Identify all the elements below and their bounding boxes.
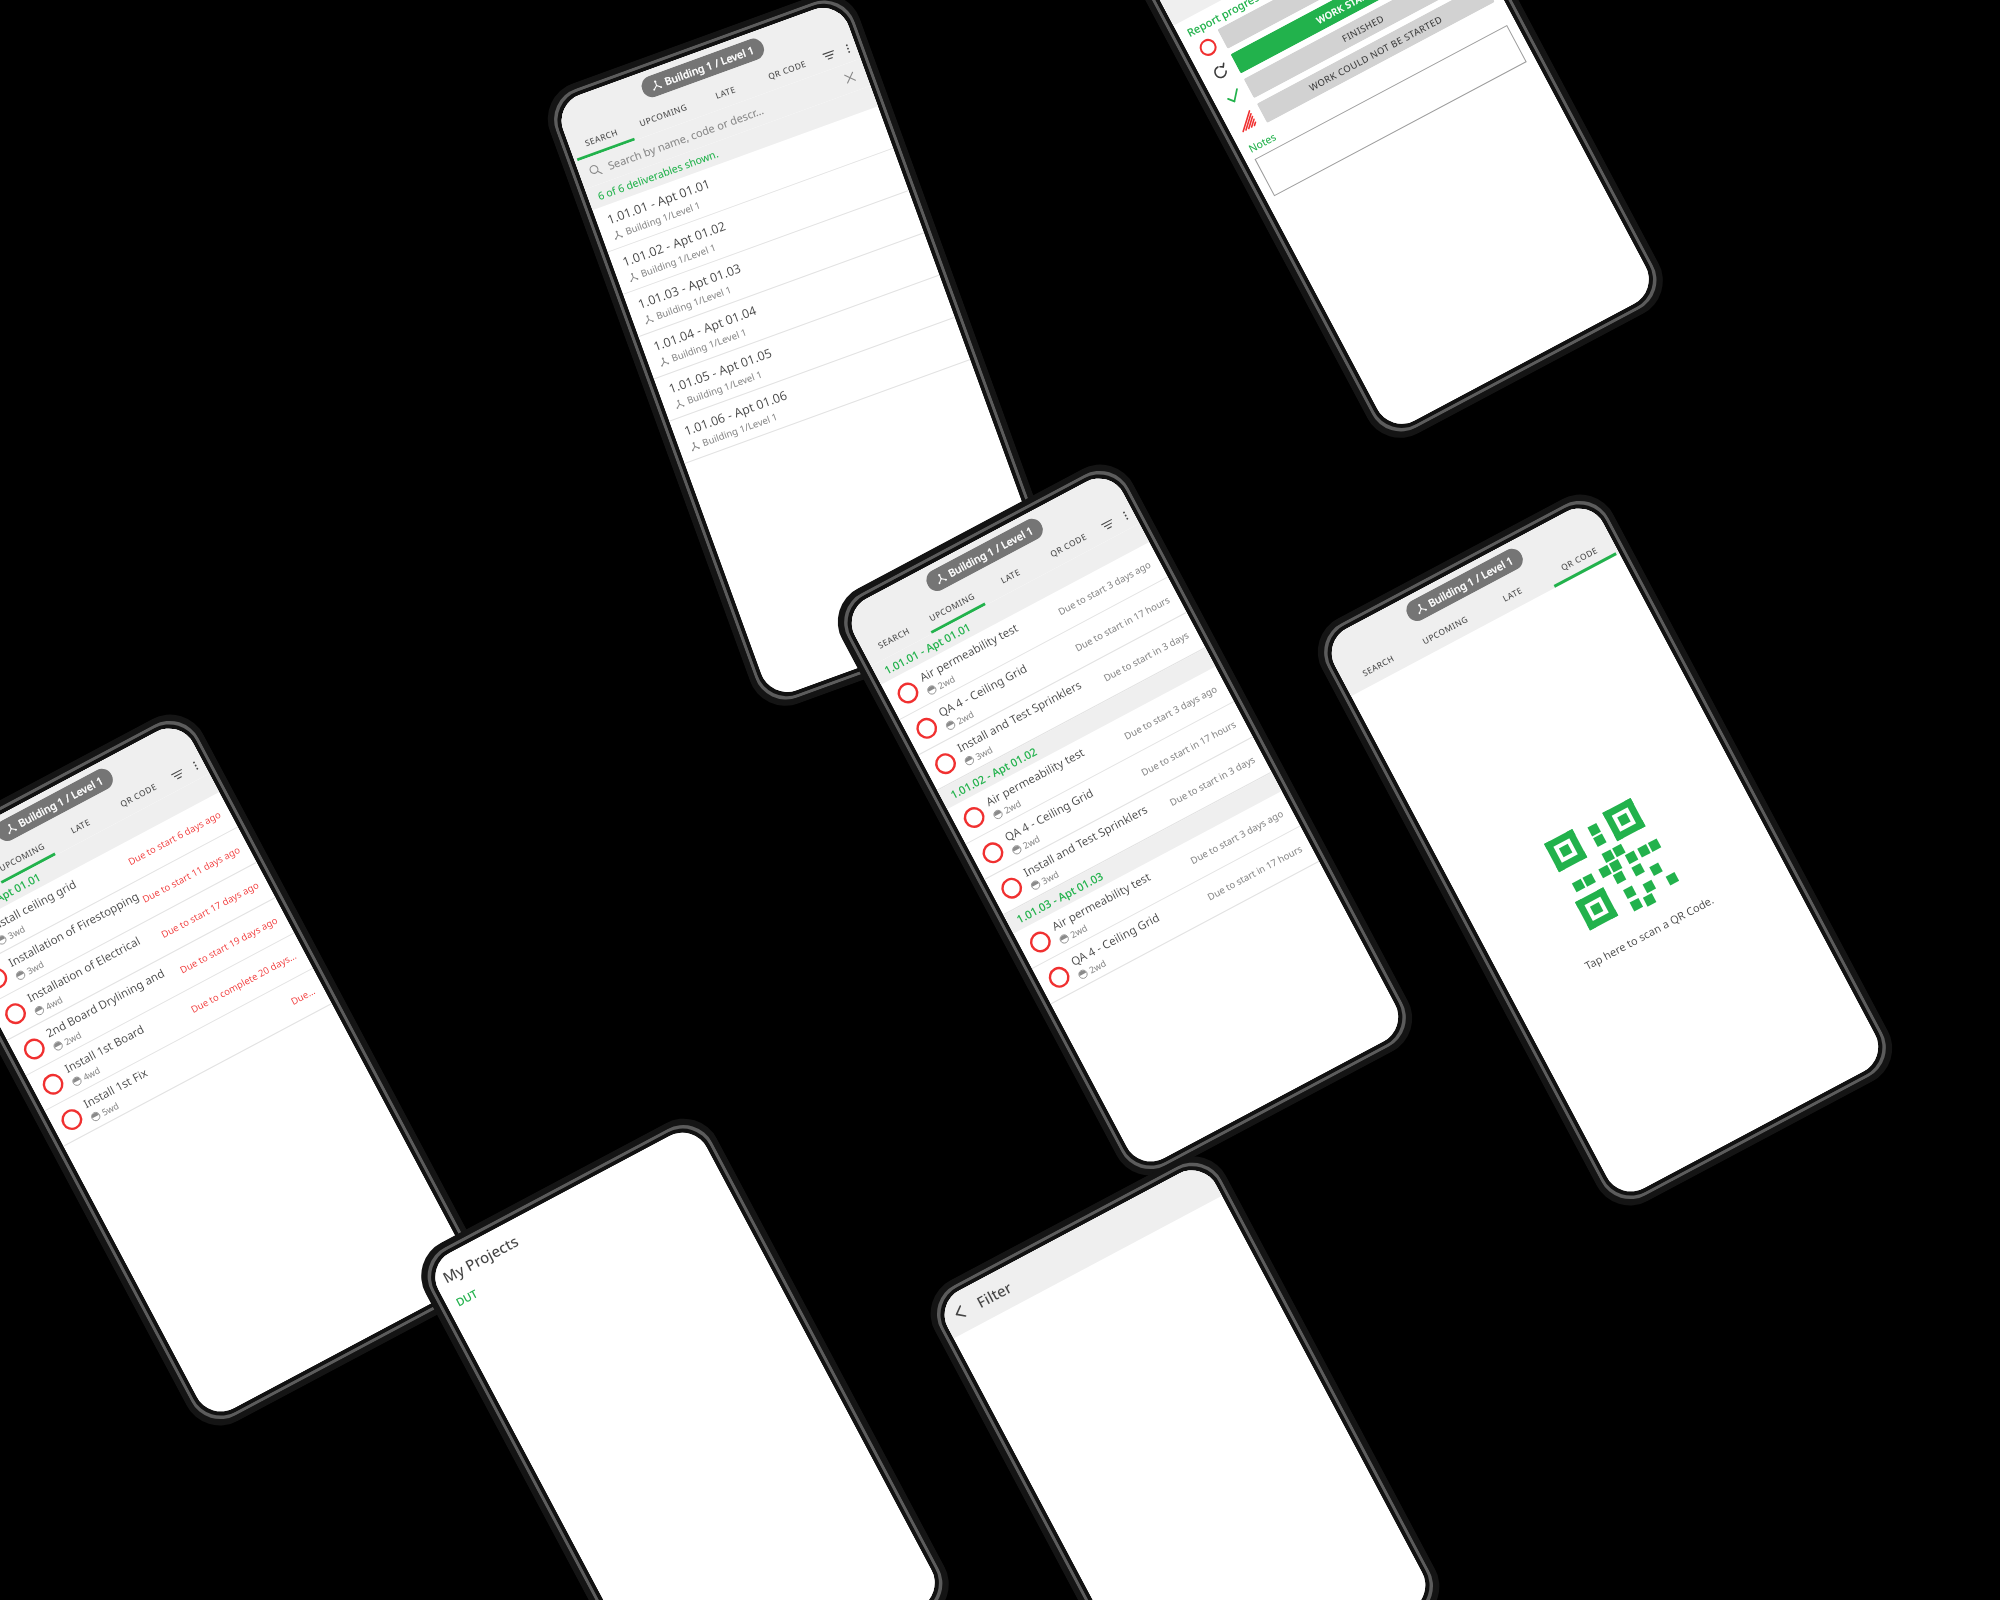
button[interactable]: Sort xyxy=(813,38,844,72)
staticText: 2wd xyxy=(1087,957,1108,976)
staticText: QR CODE xyxy=(1048,531,1089,560)
button[interactable]: Building 1 / Level 1 xyxy=(922,515,1047,595)
button[interactable]: 1.01.04 - Apt 01.04 xyxy=(639,233,939,378)
staticText: Building 1 / Level 1 xyxy=(1426,553,1516,610)
button[interactable]: More options xyxy=(180,749,209,782)
button[interactable]: More options xyxy=(1110,499,1139,532)
staticText: 1.01.05 - Apt 01.05 xyxy=(666,344,774,397)
staticText: Due to start in 17 hours xyxy=(1139,717,1239,779)
staticText: My Projects xyxy=(439,1230,523,1287)
staticText: 1.01.06 - Apt 01.06 xyxy=(682,386,790,440)
button[interactable]: QA 4 - Ceiling Grid Inspection xyxy=(966,702,1253,879)
staticText: Install and Test Sprinklers xyxy=(954,677,1085,756)
button[interactable]: LATE xyxy=(974,548,1046,604)
staticText: 2wd xyxy=(1020,832,1042,851)
staticText: 3wd xyxy=(5,922,27,941)
button[interactable]: Air permeability test xyxy=(1013,791,1300,968)
staticText: Due to complete 20 days… xyxy=(188,949,299,1016)
button[interactable]: Install 1st Board Drylining xyxy=(26,933,313,1110)
button[interactable]: Clear xyxy=(842,69,858,86)
button[interactable]: Tap here to scan a QR Code xyxy=(1351,553,1888,1201)
staticText: SEARCH xyxy=(1360,652,1397,679)
button[interactable]: Air permeability test xyxy=(881,542,1168,719)
staticText: QA 4 - Ceiling Grid Inspection xyxy=(936,636,1076,721)
staticText: Building 1/Level 1 xyxy=(670,325,749,365)
button[interactable]: Back xyxy=(949,1302,971,1323)
staticText: QR CODE xyxy=(118,781,159,810)
button[interactable]: Install and Test Sprinklers xyxy=(918,613,1205,790)
button[interactable]: Air permeability test xyxy=(947,666,1234,844)
button[interactable]: NOT STARTED xyxy=(1192,0,1455,62)
button[interactable]: Install 1st Fix xyxy=(45,969,331,1146)
button[interactable]: Installation of Firestopping system xyxy=(0,827,256,1004)
staticText: Building 1/Level 1 xyxy=(685,367,765,407)
staticText: Report progress xyxy=(1184,0,1266,40)
button[interactable]: QR CODE xyxy=(103,767,174,823)
staticText: Building 1/Level 1 xyxy=(654,283,734,322)
staticText: 2wd xyxy=(1002,797,1023,816)
button[interactable]: UPCOMING xyxy=(627,91,699,140)
button[interactable]: More options xyxy=(834,32,861,65)
button[interactable]: UPCOMING xyxy=(916,579,988,635)
button[interactable]: SEARCH xyxy=(858,610,929,666)
staticText: 4wd xyxy=(80,1063,102,1082)
button[interactable]: Building 1 / Level 1 xyxy=(638,35,767,100)
button[interactable]: QR CODE xyxy=(1539,529,1619,589)
button[interactable]: Building 1 / Level 1 xyxy=(1402,545,1527,625)
staticText: Install 1st Fix xyxy=(81,1065,151,1112)
button[interactable]: 1.01.02 - Apt 01.02 xyxy=(608,149,908,294)
button[interactable]: 2nd Board Drylining and Sockets… xyxy=(7,898,294,1075)
staticText: Building 1/Level 1 xyxy=(700,410,780,449)
staticText: WORK STARTED xyxy=(1314,0,1386,27)
staticText: DUT xyxy=(453,1285,480,1309)
button[interactable]: Install ceiling grid xyxy=(0,792,238,969)
button[interactable]: WORK STARTED xyxy=(1206,0,1469,87)
staticText: 2wd xyxy=(954,708,976,727)
button[interactable]: QR CODE xyxy=(1033,517,1104,573)
staticText: Building 1/Level 1 xyxy=(623,198,703,238)
button[interactable]: FINISHED xyxy=(1219,0,1482,111)
staticText: 5wd xyxy=(99,1099,121,1118)
button[interactable]: UPCOMING xyxy=(0,829,58,885)
button[interactable]: QR CODE xyxy=(751,46,823,95)
staticText: 3wd xyxy=(973,743,994,762)
staticText: Due to start in 17 hours xyxy=(1205,842,1305,903)
staticText: Install and Test Sprinklers xyxy=(1021,801,1151,881)
staticText: 1.01.02 - Apt 01.02 xyxy=(947,744,1039,802)
button[interactable]: Installation of Electrical and Mech… xyxy=(0,863,275,1040)
button[interactable]: 1.01.06 - Apt 01.06 xyxy=(669,318,970,463)
staticText: Due to start 6 days ago xyxy=(126,808,224,868)
staticText: QA 4 - Ceiling Grid Inspection xyxy=(1002,760,1143,845)
staticText: 3wd xyxy=(1039,867,1061,886)
button[interactable]: Sort xyxy=(1091,507,1124,542)
staticText: 1.01.02 - Apt 01.02 xyxy=(620,217,728,270)
button[interactable]: WORK COULD NOT BE STARTED xyxy=(1232,0,1495,136)
button[interactable]: SEARCH xyxy=(1338,636,1418,696)
staticText: Search by name, code or descr… xyxy=(605,73,846,173)
button[interactable]: Sort xyxy=(161,757,194,792)
button[interactable]: UPCOMING xyxy=(1405,600,1485,660)
button[interactable]: LATE xyxy=(689,68,761,117)
staticText: WORK COULD NOT BE STARTED xyxy=(1307,12,1445,94)
staticText: Installation of Electrical and Mech… xyxy=(24,922,163,1006)
staticText: Due to start 3 days ago xyxy=(1056,558,1154,618)
button[interactable]: LATE xyxy=(44,798,116,854)
button[interactable]: Install and Test Sprinklers xyxy=(985,737,1271,914)
button[interactable]: LATE xyxy=(1472,564,1552,625)
staticText: QA 4 - Ceiling Grid Inspection xyxy=(1068,885,1209,970)
staticText: Due to start 17 days ago xyxy=(159,878,261,941)
staticText: UPCOMING xyxy=(1420,613,1471,647)
staticText: LATE xyxy=(68,816,93,836)
button[interactable]: Building 1 / Level 1 xyxy=(0,765,117,845)
button[interactable]: QA 4 - Ceiling Grid Inspection xyxy=(900,577,1186,754)
button[interactable]: QA 4 - Ceiling Grid Inspection xyxy=(1032,826,1319,1003)
button[interactable]: 1.01.05 - Apt 01.05 xyxy=(654,275,955,421)
button[interactable] xyxy=(1254,25,1527,196)
staticText: QR CODE xyxy=(766,58,808,83)
staticText: Building 1/Level 1 xyxy=(639,240,718,280)
button[interactable]: 1.01.03 - Apt 01.03 xyxy=(623,191,924,336)
button[interactable]: 1.01.01 - Apt 01.01 xyxy=(592,106,893,252)
staticText: 1.01.04 - Apt 01.04 xyxy=(651,302,759,355)
button[interactable]: SEARCH xyxy=(565,113,637,162)
staticText: 4wd xyxy=(43,993,64,1012)
